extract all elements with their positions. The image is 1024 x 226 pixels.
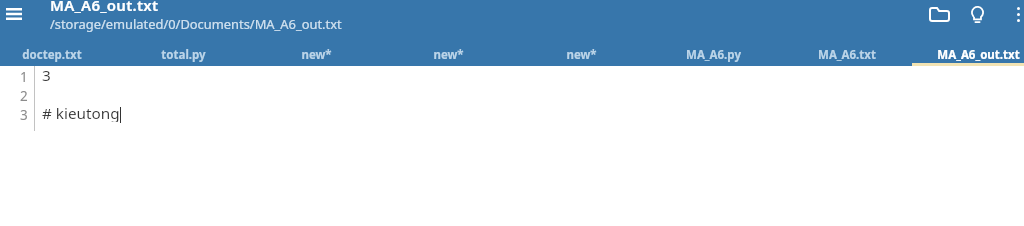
staticText: new* xyxy=(566,47,597,63)
button[interactable]: MA_A6.py xyxy=(647,43,780,66)
button[interactable]: MA_A6.txt xyxy=(780,43,913,66)
button[interactable]: MA_A6_out.txt xyxy=(912,43,1024,66)
staticText: 1 xyxy=(20,68,28,86)
button[interactable]: total.py xyxy=(117,43,250,66)
button[interactable]: Text editor xyxy=(0,66,1024,226)
button[interactable]: new* xyxy=(382,43,515,66)
button[interactable]: Toggle syntax highlight xyxy=(963,0,991,28)
button[interactable]: Open navigation drawer xyxy=(0,0,28,28)
staticText: /storage/emulated/0/Documents/MA_A6_out.… xyxy=(50,15,342,33)
button[interactable]: Open file xyxy=(925,0,953,28)
staticText: MA_A6_out.txt xyxy=(937,47,1020,63)
staticText: MA_A6.py xyxy=(686,47,741,63)
staticText: 3 xyxy=(42,65,51,84)
staticText: new* xyxy=(433,47,464,63)
button[interactable]: new* xyxy=(515,43,648,66)
staticText: total.py xyxy=(161,47,206,63)
staticText: 3 xyxy=(20,106,28,124)
staticText: MA_A6.txt xyxy=(818,47,876,63)
staticText: doctep.txt xyxy=(22,47,82,63)
staticText: new* xyxy=(301,47,332,63)
button[interactable]: More options xyxy=(1004,0,1024,28)
staticText: # kieutong xyxy=(42,103,120,122)
button[interactable]: new* xyxy=(250,43,383,66)
staticText: MA_A6_out.txt xyxy=(50,0,159,15)
button[interactable]: doctep.txt xyxy=(0,43,118,66)
staticText: 2 xyxy=(20,87,28,105)
